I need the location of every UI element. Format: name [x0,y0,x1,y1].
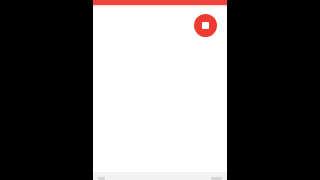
button[interactable]: Stop recording [194,14,217,37]
